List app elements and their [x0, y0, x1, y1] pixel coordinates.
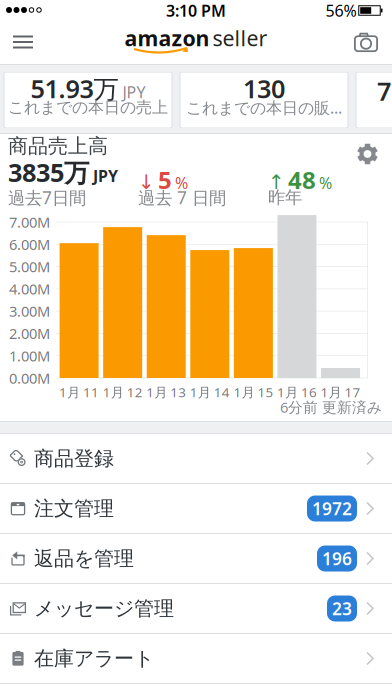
staticText: メッセージ管理	[34, 596, 174, 621]
staticText: JPY	[122, 81, 145, 103]
staticText: 昨年	[268, 187, 302, 208]
staticText: amazon	[124, 24, 209, 52]
staticText: 1月 15	[233, 383, 273, 401]
staticText: 商品売上高	[8, 134, 108, 158]
staticText: 3.00M	[9, 301, 50, 321]
staticText: 1月 17	[320, 383, 360, 401]
staticText: 48	[288, 164, 316, 196]
staticText: %	[175, 172, 188, 193]
staticText: 注文管理	[34, 496, 114, 521]
staticText: これまでの本日の販...	[186, 97, 342, 118]
button[interactable]: メッセージ管理	[0, 584, 392, 633]
staticText: 130	[243, 72, 285, 105]
staticText: 51.93万	[30, 72, 118, 105]
staticText: 返品を管理	[34, 546, 134, 571]
staticText: ↑	[268, 171, 285, 193]
staticText: 6分前 更新済み	[280, 397, 382, 417]
staticText: 2.00M	[9, 324, 50, 343]
staticText: 196	[322, 547, 352, 570]
button[interactable]: 51.93万	[4, 72, 172, 128]
staticText: 1972	[312, 497, 352, 520]
staticText: 在庫アラート	[34, 646, 154, 671]
staticText: 7.00M	[9, 212, 50, 232]
staticText: 4.00M	[9, 279, 50, 299]
staticText: JPY	[93, 165, 118, 186]
staticText: ↓	[138, 171, 155, 193]
button[interactable]: 注文管理	[0, 484, 392, 533]
button[interactable]: Camera	[345, 24, 387, 60]
staticText: 1月 16	[277, 383, 317, 401]
staticText: 1.00M	[9, 346, 50, 365]
staticText: 5.00M	[9, 257, 50, 276]
staticText: 1月 14	[190, 383, 230, 401]
button[interactable]: Settings	[353, 140, 381, 168]
staticText: 56%	[325, 0, 356, 21]
staticText: 1月 12	[103, 383, 143, 401]
button[interactable]: 返品を管理	[0, 534, 392, 583]
button[interactable]: 商品登録	[0, 434, 392, 483]
staticText: 過去7日間	[8, 186, 86, 209]
staticText: 1月 11	[59, 383, 99, 401]
staticText: 6.00M	[9, 234, 50, 254]
staticText: 5	[158, 164, 172, 196]
staticText: 23	[332, 597, 352, 620]
staticText: 3:10 PM	[166, 0, 226, 21]
button[interactable]: Menu	[3, 25, 43, 58]
staticText: seller	[212, 24, 267, 52]
button[interactable]: 7	[356, 72, 392, 128]
button[interactable]: 在庫アラート	[0, 634, 392, 683]
staticText: 7	[377, 74, 391, 108]
staticText: これまでの本日の売上	[8, 98, 168, 117]
button[interactable]: 130	[180, 72, 348, 128]
staticText: 1月 13	[146, 383, 186, 401]
staticText: 0.00M	[9, 368, 50, 388]
staticText: 3835万	[8, 155, 89, 189]
staticText: 商品登録	[34, 446, 114, 471]
staticText: %	[319, 172, 332, 193]
staticText: 過去 7 日間	[138, 186, 226, 209]
